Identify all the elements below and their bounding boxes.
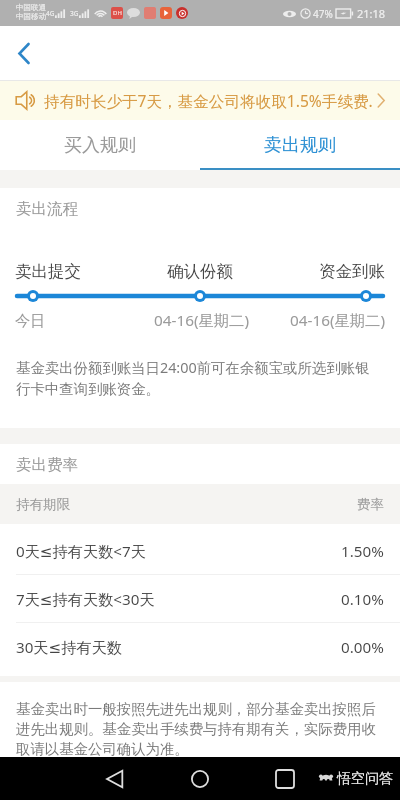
button[interactable]: 持有时长少于7天，基金公司将收取1.5%手续费. [0,81,400,120]
staticText: 持有时长少于7天，基金公司将收取1.5%手续费. [44,90,373,111]
button[interactable]: Recents [267,761,303,797]
staticText: 4G [46,9,55,18]
staticText: 中国移动 [16,12,46,21]
staticText: 0.10% [341,589,384,610]
button[interactable]: Home [182,761,218,797]
staticText: 04-16(星期二) [290,310,385,331]
button[interactable]: 0天≤持有天数<7天 [0,527,400,575]
staticText: 21:18 [357,6,386,21]
staticText: 3G [70,9,79,18]
staticText: 悟空问答 [337,770,393,788]
button[interactable]: Back [96,761,132,797]
button[interactable]: 30天≤持有天数 [0,623,400,671]
staticText: 基金卖出份额到账当日24:00前可在余额宝或所选到账银行卡中查询到账资金。 [16,358,378,398]
staticText: 中国联通 [16,3,46,12]
staticText: 0天≤持有天数<7天 [16,541,146,562]
staticText: 卖出费率 [16,455,78,475]
button[interactable]: 卖出规则 [200,120,400,170]
staticText: 费率 [357,496,384,513]
staticText: 持有期限 [16,496,70,513]
staticText: 7天≤持有天数<30天 [16,589,155,610]
staticText: 基金卖出时一般按照先进先出规则，部分基金卖出按照后进先出规则。基金卖出手续费与持… [16,700,384,758]
staticText: 买入规则 [64,134,136,157]
button[interactable]: 买入规则 [0,120,200,170]
staticText: 卖出流程 [16,199,78,219]
staticText: 卖出提交 [15,261,81,282]
staticText: DH [113,9,122,17]
button[interactable]: 7天≤持有天数<30天 [0,575,400,623]
staticText: 47% [313,7,333,21]
staticText: 1.50% [341,541,384,562]
staticText: 0.00% [341,637,384,658]
staticText: 确认份额 [167,261,233,282]
staticText: 今日 [15,311,46,330]
staticText: 卖出规则 [264,134,336,157]
staticText: 04-16(星期二) [154,310,249,331]
button[interactable]: Back [4,33,44,73]
staticText: 30天≤持有天数 [16,637,123,658]
staticText: 资金到账 [319,261,385,282]
